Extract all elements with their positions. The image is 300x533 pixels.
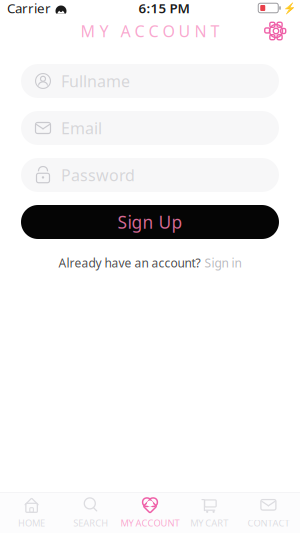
button[interactable]: Email xyxy=(21,111,279,145)
staticText: Already have an account? xyxy=(58,255,200,271)
staticText: Carrier xyxy=(7,0,51,17)
staticText: HOME xyxy=(18,517,45,529)
button[interactable]: Settings xyxy=(258,15,294,47)
staticText: 6:15 PM xyxy=(138,0,189,17)
staticText: MY CART xyxy=(190,517,228,529)
staticText: ⚡ xyxy=(283,2,296,14)
staticText: Email xyxy=(61,117,102,139)
button[interactable]: SEARCH xyxy=(61,493,120,533)
button[interactable]: MY ACCOUNT xyxy=(120,493,180,533)
staticText: M Y A C C O U N T xyxy=(80,20,219,42)
staticText: Sign in xyxy=(204,255,241,271)
staticText: Sign Up xyxy=(117,210,182,233)
button[interactable]: HOME xyxy=(2,493,61,533)
staticText: MY ACCOUNT xyxy=(120,517,179,529)
staticText: CONTACT xyxy=(247,517,289,529)
button[interactable]: MY CART xyxy=(180,493,239,533)
staticText: Fullname xyxy=(61,70,130,92)
staticText: Password xyxy=(61,164,135,186)
button[interactable]: CONTACT xyxy=(239,493,298,533)
button[interactable]: Password xyxy=(21,158,279,192)
staticText: SEARCH xyxy=(73,517,108,529)
button[interactable]: Fullname xyxy=(21,64,279,98)
button[interactable]: Sign Up xyxy=(21,205,279,239)
button[interactable]: Already have an account? xyxy=(58,252,241,274)
